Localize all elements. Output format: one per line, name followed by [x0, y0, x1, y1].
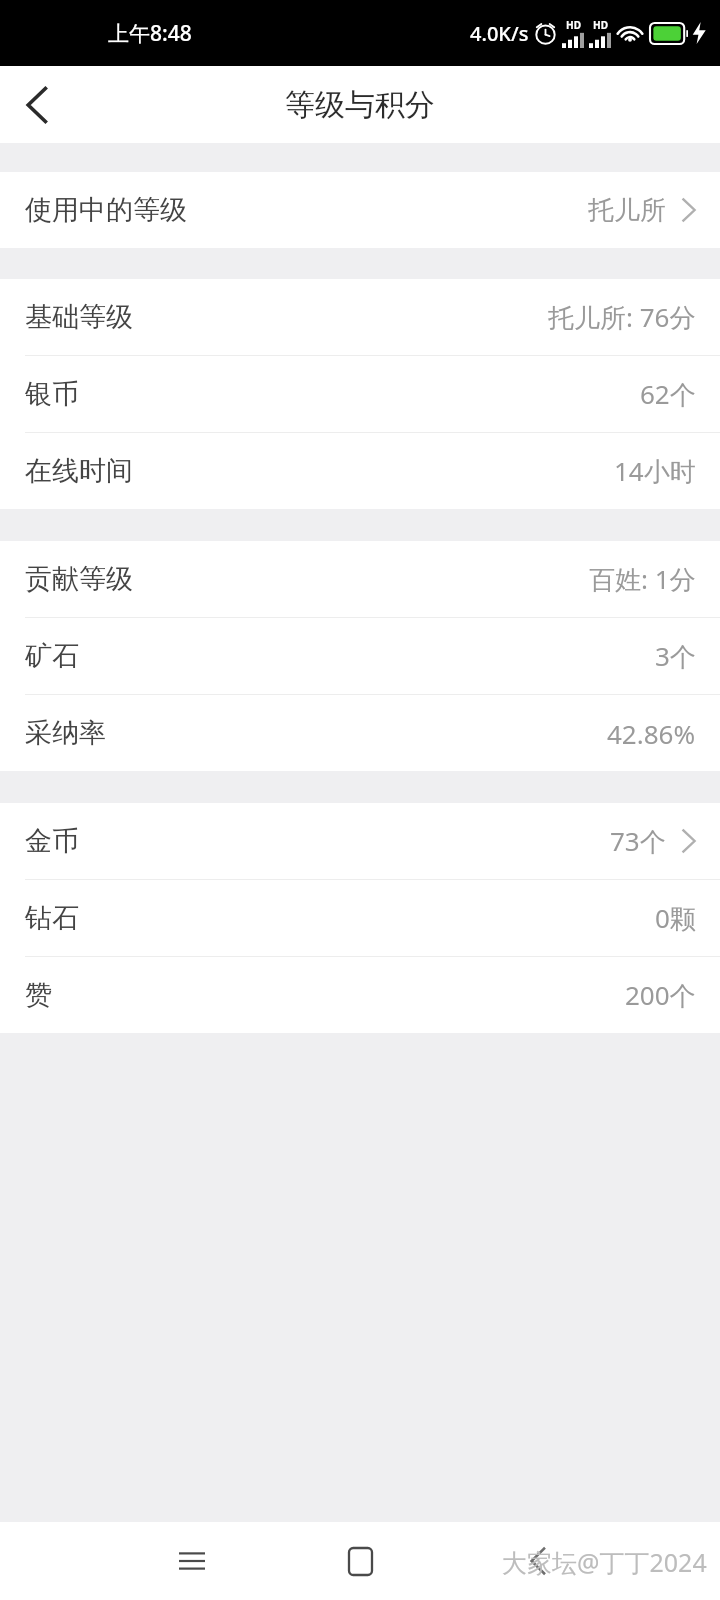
staticText: 62个 [640, 376, 696, 412]
staticText: 在线时间 [25, 454, 133, 488]
button[interactable]: 银币 [0, 356, 720, 432]
button[interactable]: 在线时间 [0, 433, 720, 509]
staticText: 使用中的等级 [25, 193, 187, 227]
button[interactable]: Home [320, 1522, 400, 1600]
button[interactable]: 赞 [0, 957, 720, 1033]
button[interactable]: 采纳率 [0, 695, 720, 771]
staticText: HD [566, 18, 581, 32]
button[interactable]: 使用中的等级 [0, 172, 720, 248]
staticText: 托儿所: 76分 [548, 299, 696, 335]
button[interactable]: 基础等级 [0, 279, 720, 355]
staticText: 矿石 [25, 639, 79, 673]
staticText: 金币 [25, 824, 79, 858]
button[interactable]: Back [498, 1522, 578, 1600]
staticText: HD [593, 18, 608, 32]
staticText: 4.0K/s [470, 20, 529, 47]
staticText: 贡献等级 [25, 562, 133, 596]
staticText: 采纳率 [25, 716, 106, 750]
staticText: 上午8:48 [108, 19, 192, 48]
staticText: 3个 [655, 638, 696, 674]
staticText: 托儿所 [588, 194, 666, 227]
staticText: 百姓: 1分 [589, 561, 696, 597]
staticText: 0颗 [655, 900, 696, 936]
button[interactable]: Recents [152, 1522, 232, 1600]
staticText: 大家坛@丁丁2024 [502, 1545, 707, 1579]
staticText: 73个 [610, 823, 666, 859]
button[interactable]: 贡献等级 [0, 541, 720, 617]
staticText: 14小时 [614, 453, 696, 489]
staticText: 42.86% [607, 716, 696, 751]
staticText: 银币 [25, 377, 79, 411]
staticText: 钻石 [25, 901, 79, 935]
staticText: 赞 [25, 978, 52, 1012]
staticText: 基础等级 [25, 300, 133, 334]
staticText: 等级与积分 [285, 86, 435, 124]
button[interactable]: 矿石 [0, 618, 720, 694]
button[interactable]: Back [0, 68, 74, 142]
button[interactable]: 金币 [0, 803, 720, 879]
button[interactable]: 钻石 [0, 880, 720, 956]
staticText: 200个 [625, 977, 696, 1013]
